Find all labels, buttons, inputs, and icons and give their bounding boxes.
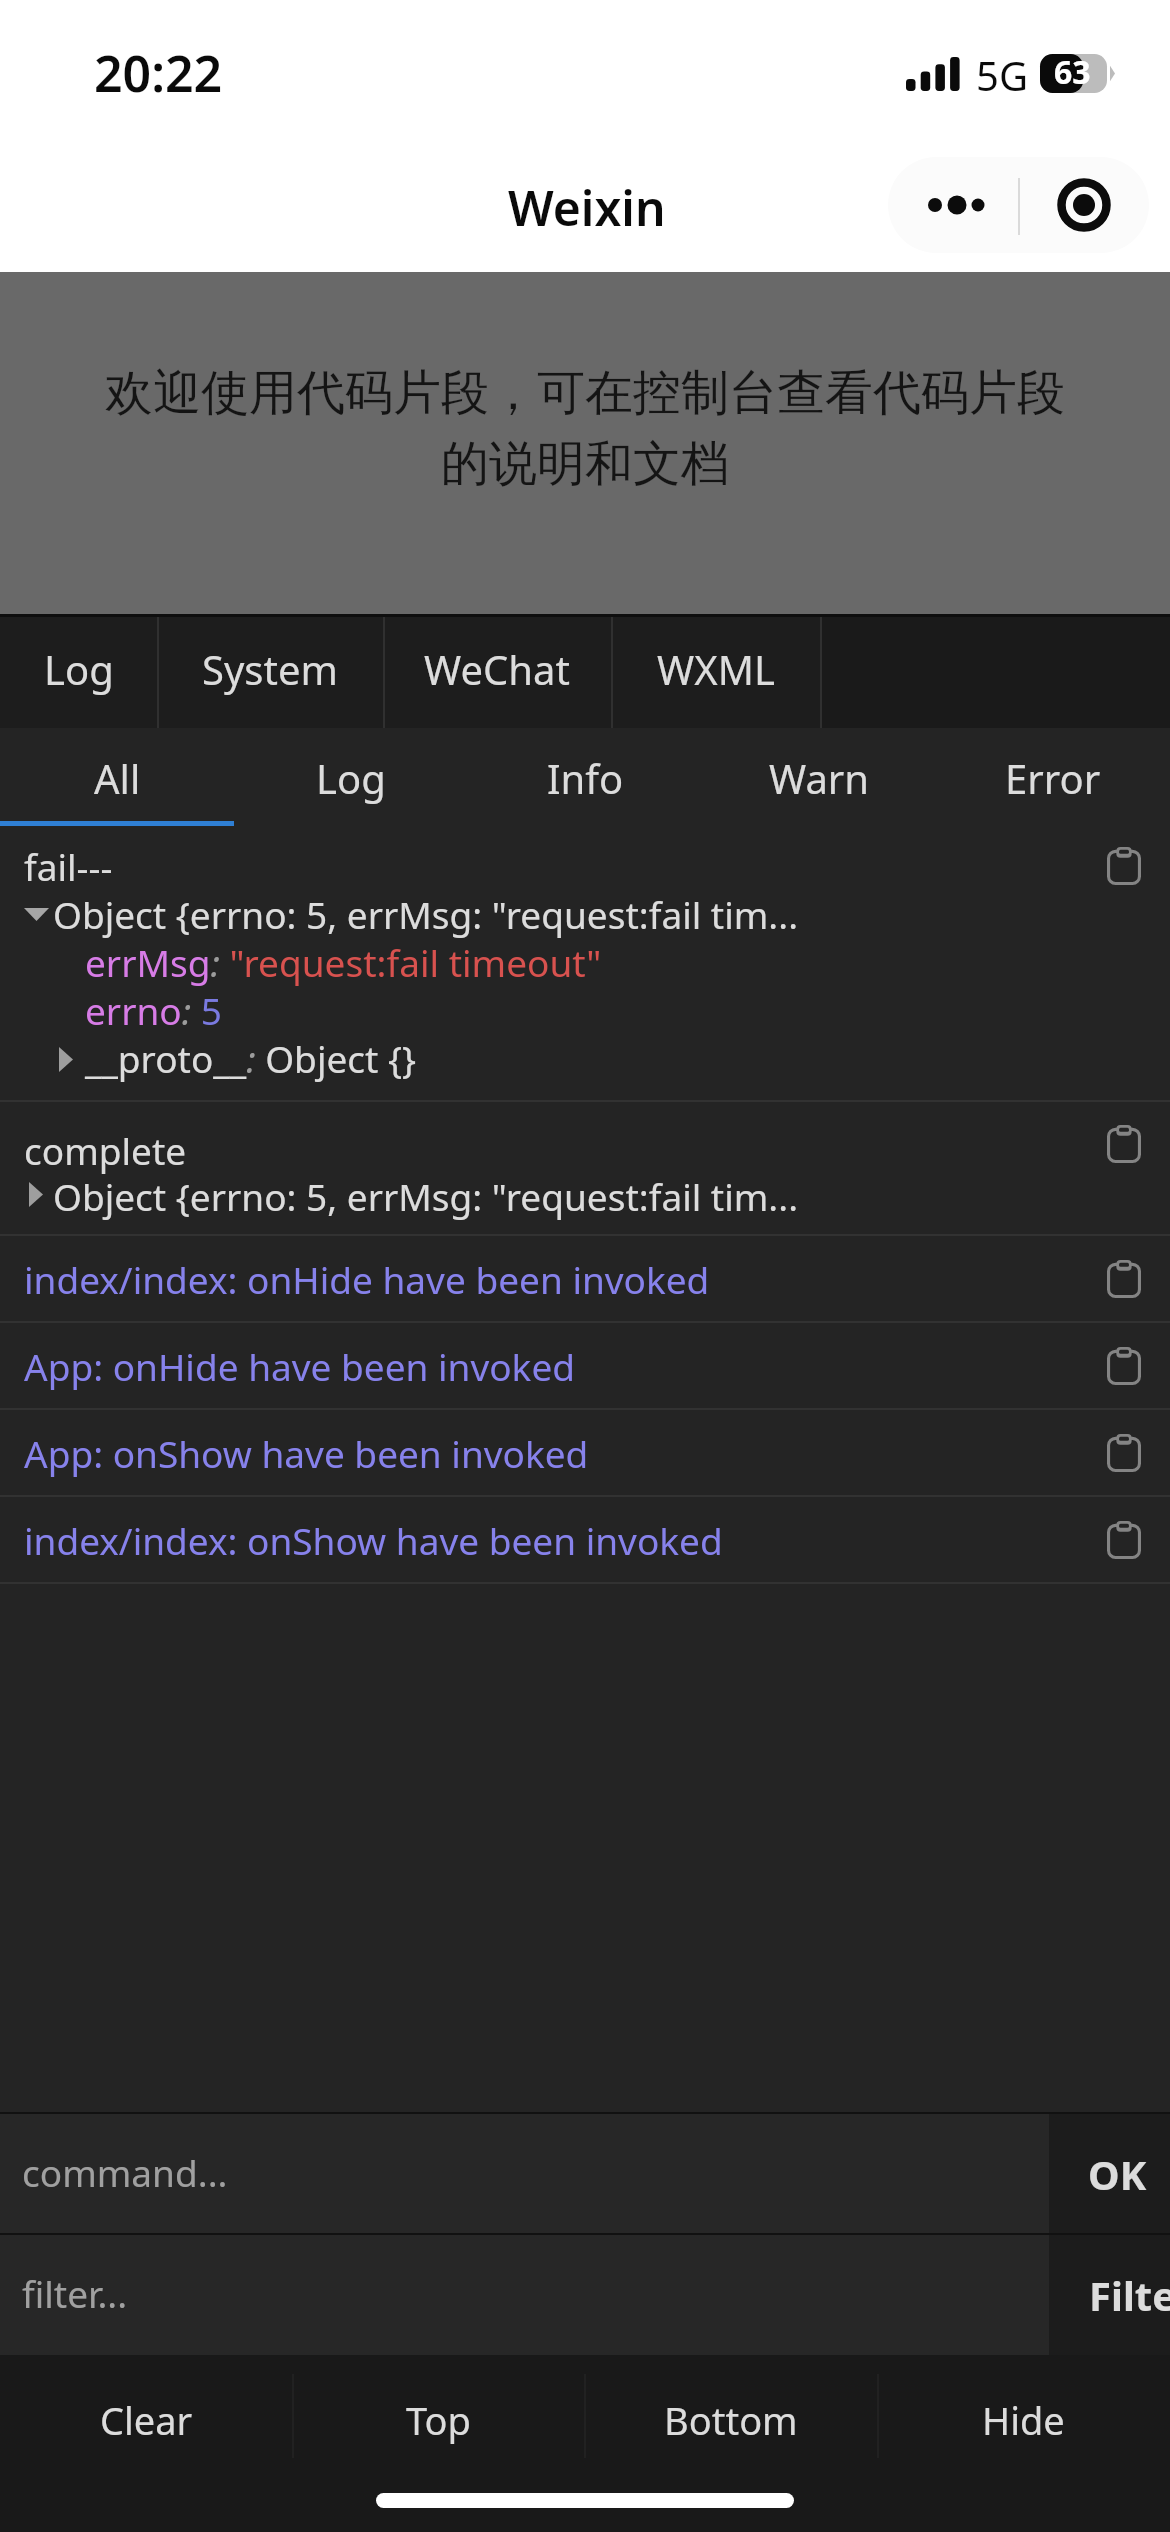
- staticText: __proto__: Object {}: [85, 1033, 417, 1083]
- button[interactable]: Hide: [877, 2355, 1170, 2479]
- button[interactable]: filter...: [0, 2235, 1049, 2355]
- button[interactable]: App: onShow have been invoked: [0, 1410, 1170, 1495]
- button[interactable]: WeChat: [383, 617, 611, 728]
- button[interactable]: Copy log entry: [1094, 1336, 1154, 1396]
- button[interactable]: command...: [0, 2114, 1049, 2233]
- staticText: Log: [44, 642, 114, 696]
- staticText: Object {errno: 5, errMsg: "request:fail …: [53, 1171, 799, 1221]
- staticText: fail---: [24, 841, 113, 891]
- button[interactable]: Copy log entry: [1094, 1249, 1154, 1309]
- staticText: App: onHide have been invoked: [24, 1341, 576, 1391]
- staticText: 的说明和文档: [441, 434, 729, 494]
- staticText: Log: [316, 751, 386, 805]
- staticText: All: [94, 751, 141, 805]
- button[interactable]: Top: [292, 2355, 584, 2479]
- button[interactable]: More options: [888, 157, 1018, 253]
- staticText: filter...: [22, 2268, 128, 2318]
- staticText: WeChat: [424, 642, 570, 696]
- staticText: WXML: [657, 642, 775, 696]
- staticText: OK: [1088, 2147, 1147, 2201]
- staticText: index/index: onHide have been invoked: [24, 1254, 710, 1304]
- button[interactable]: Log: [234, 728, 468, 826]
- staticText: Warn: [769, 751, 870, 805]
- button[interactable]: Warn: [702, 728, 936, 826]
- staticText: Info: [547, 751, 624, 805]
- staticText: Bottom: [664, 2394, 798, 2446]
- staticText: Error: [1005, 751, 1101, 805]
- button[interactable]: OK: [1049, 2114, 1170, 2233]
- button[interactable]: index/index: onShow have been invoked: [0, 1497, 1170, 1582]
- button[interactable]: Info: [468, 728, 702, 826]
- staticText: command...: [22, 2147, 228, 2197]
- staticText: Hide: [982, 2394, 1065, 2446]
- staticText: Clear: [100, 2394, 193, 2446]
- staticText: App: onShow have been invoked: [24, 1428, 589, 1478]
- button[interactable]: System: [157, 617, 383, 728]
- button[interactable]: Filter: [1049, 2235, 1170, 2355]
- button[interactable]: fail---: [0, 826, 1170, 1100]
- staticText: complete: [24, 1125, 187, 1175]
- staticText: errno: 5: [85, 985, 222, 1035]
- staticText: 欢迎使用代码片段，可在控制台查看代码片段: [105, 363, 1065, 423]
- button[interactable]: Copy log entry: [1094, 1114, 1154, 1174]
- staticText: errMsg: "request:fail timeout": [85, 937, 602, 987]
- button[interactable]: Copy log entry: [1094, 1510, 1154, 1570]
- button[interactable]: Bottom: [584, 2355, 877, 2479]
- button[interactable]: Close mini program: [1020, 157, 1149, 253]
- button[interactable]: WXML: [611, 617, 820, 728]
- staticText: 63: [1054, 50, 1091, 89]
- staticText: Filter: [1089, 2268, 1170, 2322]
- button[interactable]: Log: [0, 617, 157, 728]
- staticText: Top: [406, 2394, 471, 2446]
- staticText: 20:22: [94, 39, 223, 107]
- button[interactable]: index/index: onHide have been invoked: [0, 1236, 1170, 1321]
- button[interactable]: Clear: [0, 2355, 292, 2479]
- staticText: Weixin: [508, 175, 666, 240]
- button[interactable]: Copy log entry: [1094, 1423, 1154, 1483]
- button[interactable]: App: onHide have been invoked: [0, 1323, 1170, 1408]
- button[interactable]: Copy log entry: [1094, 836, 1154, 896]
- button[interactable]: All: [0, 728, 234, 826]
- button[interactable]: Error: [936, 728, 1170, 826]
- staticText: Object {errno: 5, errMsg: "request:fail …: [53, 889, 799, 939]
- staticText: 5G: [976, 48, 1028, 102]
- button[interactable]: complete: [0, 1102, 1170, 1234]
- staticText: index/index: onShow have been invoked: [24, 1515, 723, 1565]
- staticText: System: [202, 642, 338, 696]
